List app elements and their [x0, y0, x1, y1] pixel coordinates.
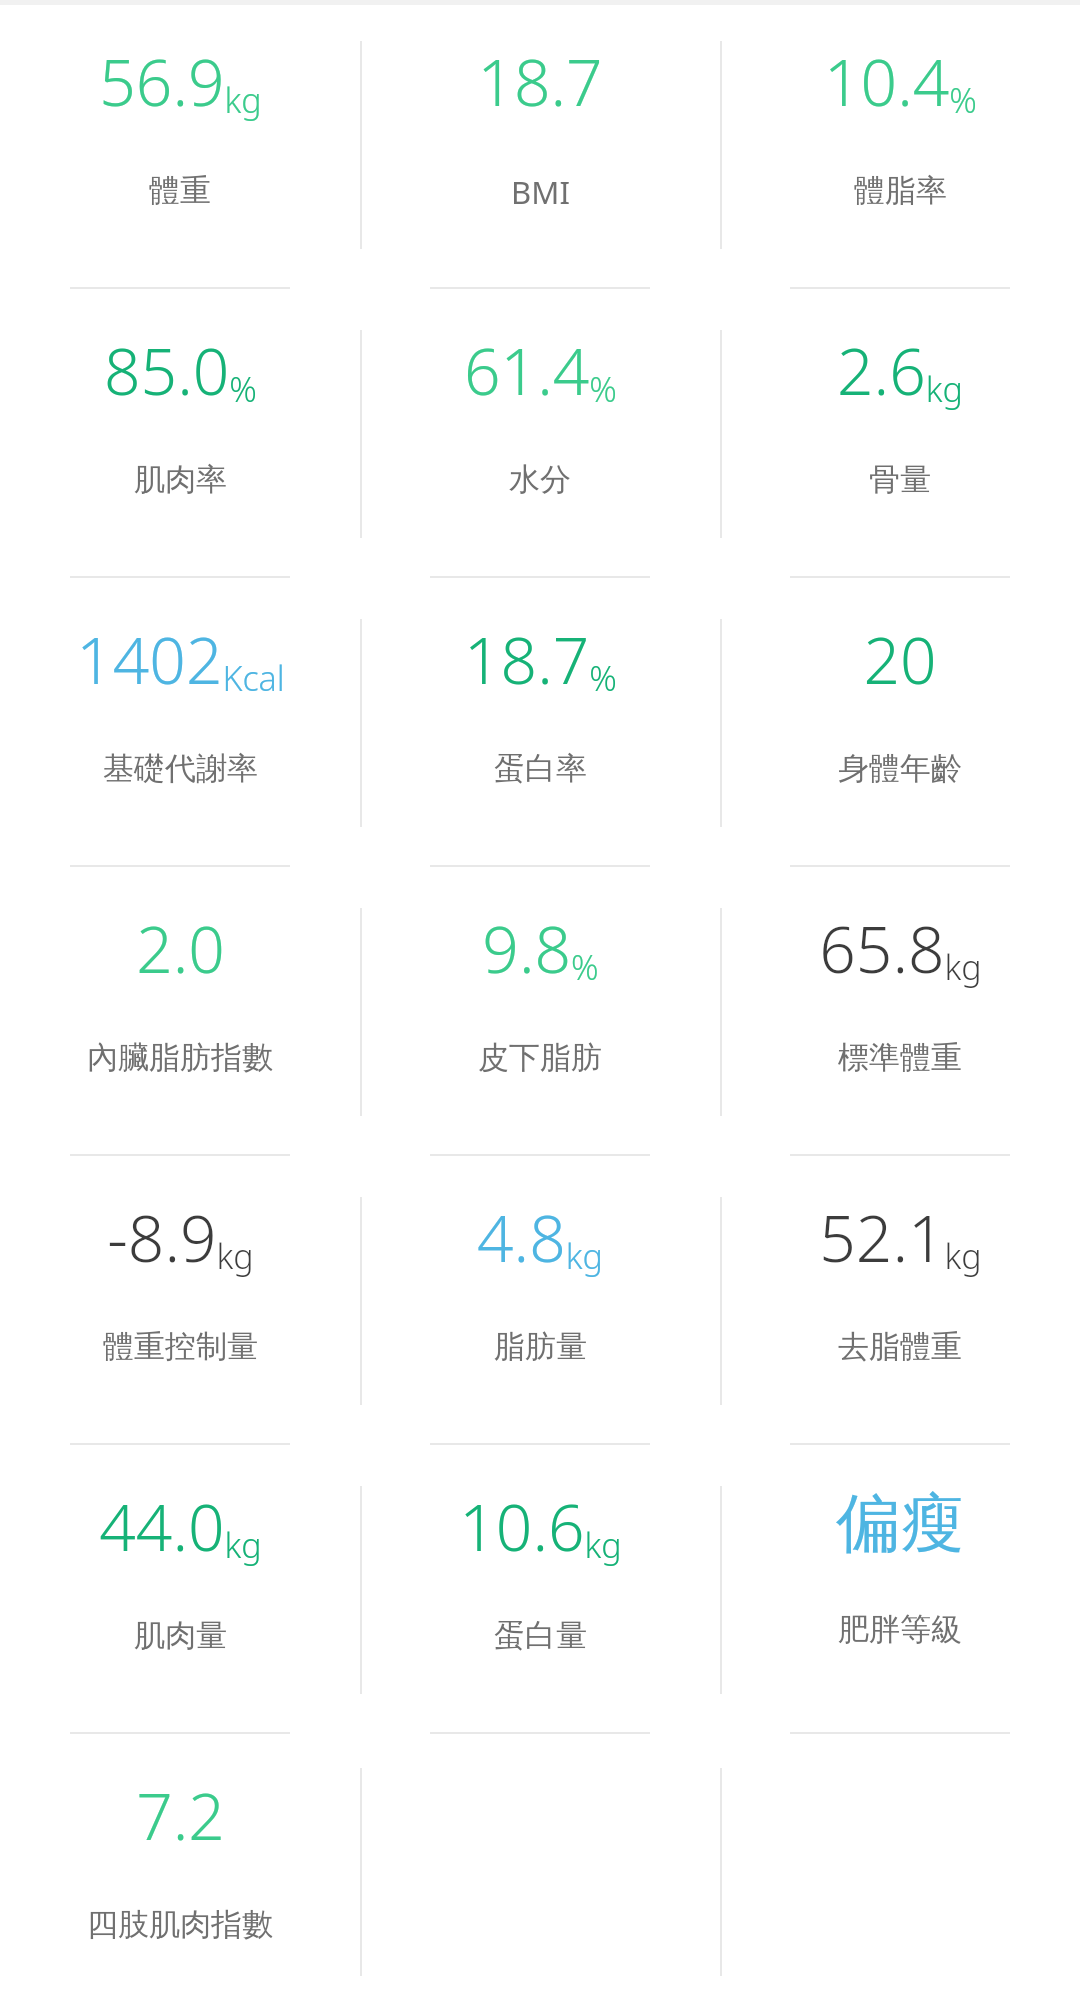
button[interactable]: 2.6kg	[720, 289, 1080, 578]
staticText: -8.9kg	[107, 1194, 254, 1281]
staticText: 身體年齡	[838, 749, 962, 788]
staticText: 水分	[509, 460, 571, 499]
staticText: 骨量	[869, 460, 931, 499]
button[interactable]: 18.7	[360, 0, 720, 289]
staticText: 蛋白量	[494, 1616, 587, 1655]
staticText: 20	[863, 616, 937, 703]
button[interactable]: 9.8%	[360, 867, 720, 1156]
staticText: 10.4%	[824, 38, 977, 125]
button[interactable]: 56.9kg	[0, 0, 360, 289]
button[interactable]: 61.4%	[360, 289, 720, 578]
button[interactable]: 65.8kg	[720, 867, 1080, 1156]
staticText: 皮下脂肪	[478, 1038, 602, 1077]
button[interactable]: 10.6kg	[360, 1445, 720, 1734]
staticText: 10.6kg	[459, 1483, 622, 1570]
button[interactable]: 1402Kcal	[0, 578, 360, 867]
button[interactable]: 偏瘦	[720, 1445, 1080, 1734]
staticText: 四肢肌肉指數	[87, 1905, 273, 1944]
staticText: 肌肉量	[134, 1616, 227, 1655]
staticText: 4.8kg	[477, 1194, 603, 1281]
staticText: 9.8%	[482, 905, 599, 992]
staticText: 61.4%	[464, 327, 617, 414]
button[interactable]: 10.4%	[720, 0, 1080, 289]
staticText: 體脂率	[854, 171, 947, 210]
staticText: 44.0kg	[99, 1483, 262, 1570]
button[interactable]: 44.0kg	[0, 1445, 360, 1734]
staticText: 18.7	[477, 38, 603, 125]
staticText: 2.6kg	[837, 327, 963, 414]
button[interactable]: 85.0%	[0, 289, 360, 578]
staticText: 體重	[149, 171, 211, 210]
staticText: 標準體重	[838, 1038, 962, 1077]
button[interactable]: 52.1kg	[720, 1156, 1080, 1445]
button[interactable]: 20	[720, 578, 1080, 867]
button[interactable]: 4.8kg	[360, 1156, 720, 1445]
staticText: 18.7%	[464, 616, 617, 703]
button[interactable]: 2.0	[0, 867, 360, 1156]
staticText: 肥胖等級	[838, 1610, 962, 1649]
button[interactable]: 7.2	[0, 1734, 360, 2009]
staticText: 65.8kg	[819, 905, 982, 992]
staticText: 蛋白率	[494, 749, 587, 788]
staticText: 56.9kg	[99, 38, 262, 125]
staticText: 85.0%	[104, 327, 257, 414]
staticText: BMI	[511, 171, 570, 213]
staticText: 52.1kg	[819, 1194, 982, 1281]
staticText: 脂肪量	[494, 1327, 587, 1366]
staticText: 內臟脂肪指數	[87, 1038, 273, 1077]
staticText: 偏瘦	[836, 1483, 964, 1564]
button[interactable]: 18.7%	[360, 578, 720, 867]
staticText: 2.0	[136, 905, 225, 992]
staticText: 基礎代謝率	[103, 749, 258, 788]
staticText: 肌肉率	[134, 460, 227, 499]
staticText: 去脂體重	[838, 1327, 962, 1366]
staticText: 7.2	[136, 1772, 225, 1859]
staticText: 體重控制量	[103, 1327, 258, 1366]
button[interactable]: -8.9kg	[0, 1156, 360, 1445]
staticText: 1402Kcal	[76, 616, 285, 703]
